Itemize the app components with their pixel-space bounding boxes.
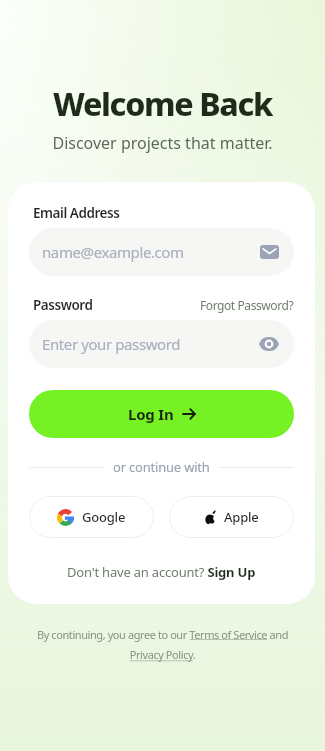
other: Email	[260, 245, 279, 259]
button[interactable]: Don't have an account? Sign Up	[67, 563, 256, 581]
staticText: Log In	[128, 404, 174, 424]
staticText: name@example.com	[42, 242, 260, 262]
staticText: Enter your password	[42, 334, 259, 354]
button[interactable]: Google	[29, 496, 154, 538]
button[interactable]: Apple	[169, 496, 294, 538]
staticText: Password	[33, 296, 93, 314]
staticText: Apple	[224, 508, 259, 526]
button[interactable]: Enter your password	[29, 320, 294, 368]
staticText: Email Address	[33, 204, 120, 222]
staticText: Welcome Back	[0, 82, 325, 126]
button[interactable]: Log In	[29, 390, 294, 438]
other: Show password	[259, 337, 279, 351]
staticText: By continuing, you agree to our Terms of…	[30, 627, 295, 663]
staticText: Discover projects that matter.	[0, 132, 325, 154]
staticText: or continue with	[113, 458, 210, 476]
button[interactable]: name@example.com	[29, 228, 294, 276]
staticText: Google	[82, 508, 126, 526]
button[interactable]: Forgot Password?	[200, 297, 294, 313]
